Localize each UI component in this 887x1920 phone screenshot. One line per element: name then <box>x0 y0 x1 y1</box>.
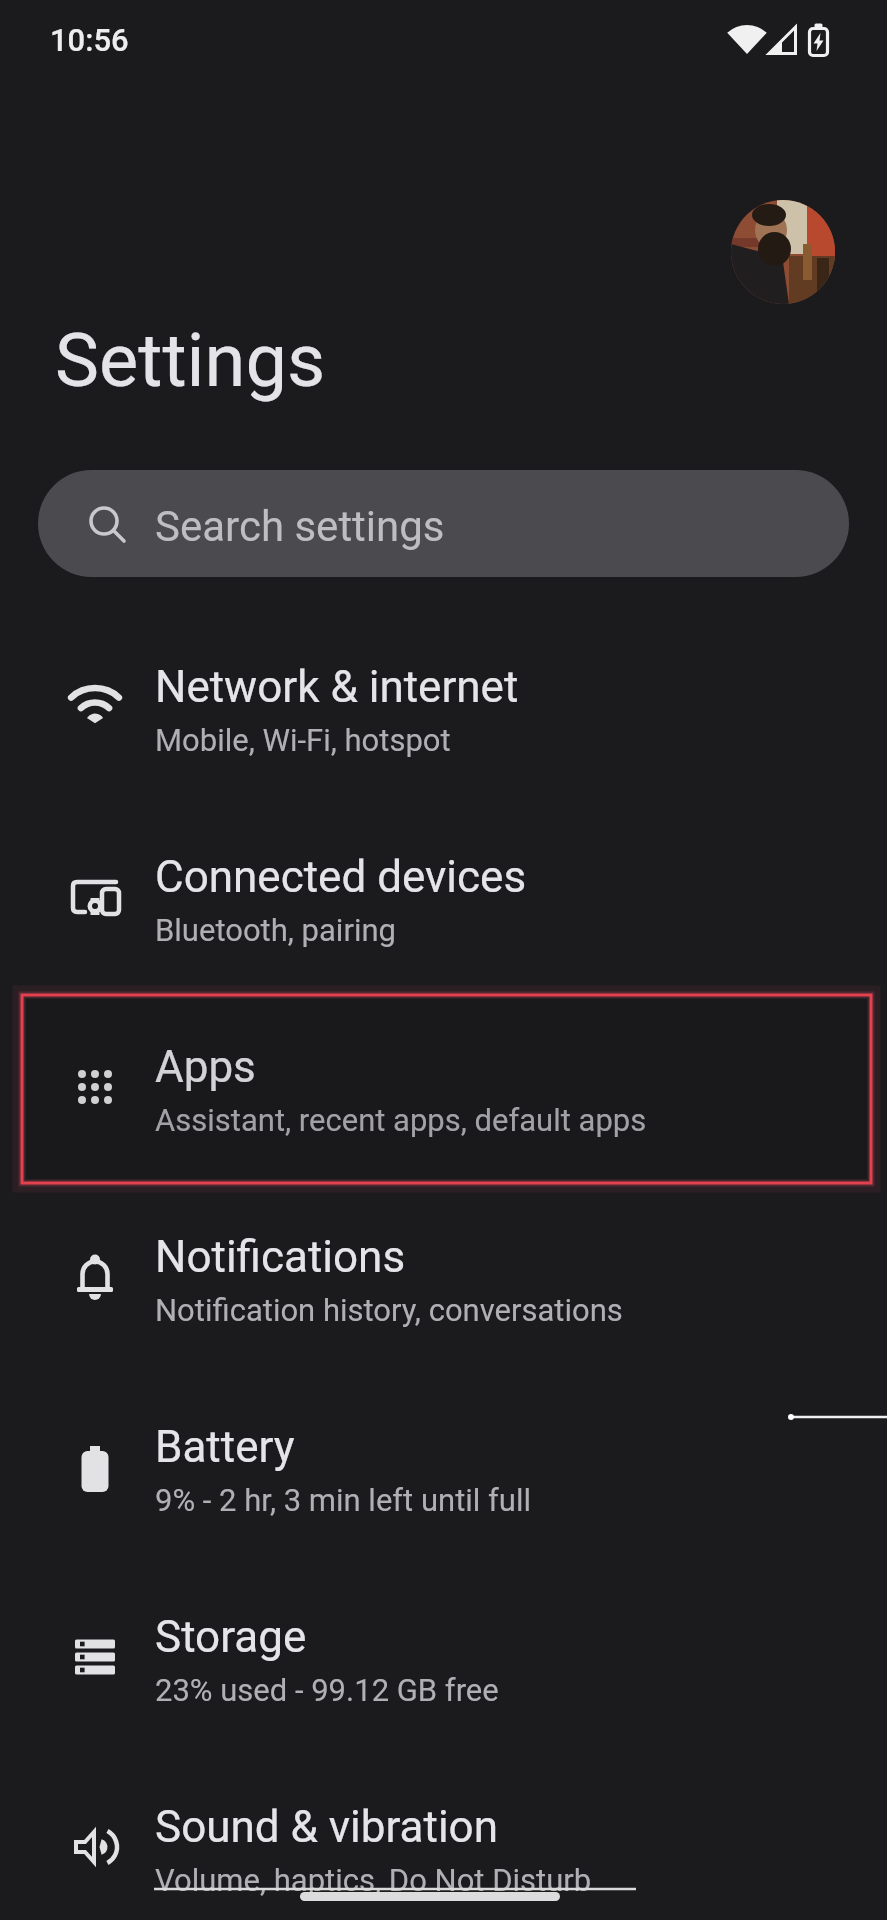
staticText: Storage <box>155 1611 307 1663</box>
staticText: Notification history, conversations <box>155 1292 623 1328</box>
staticText: 23% used - 99.12 GB free <box>155 1672 499 1708</box>
button[interactable]: Search settings <box>38 470 849 577</box>
staticText: 9% - 2 hr, 3 min left until full <box>155 1482 531 1518</box>
staticText: Apps <box>155 1041 256 1093</box>
button[interactable]: Sound & vibration <box>0 1758 887 1920</box>
staticText: Connected devices <box>155 851 527 903</box>
staticText: Search settings <box>155 502 445 551</box>
staticText: Mobile, Wi-Fi, hotspot <box>155 722 451 758</box>
staticText: Sound & vibration <box>155 1801 498 1853</box>
button[interactable]: Network & internet <box>0 618 887 808</box>
staticText: Battery <box>155 1421 295 1473</box>
button[interactable]: Storage <box>0 1568 887 1758</box>
button[interactable]: Notifications <box>0 1188 887 1378</box>
staticText: Notifications <box>155 1231 406 1283</box>
staticText: Network & internet <box>155 661 519 713</box>
button[interactable]: Apps <box>0 998 887 1188</box>
staticText: Volume, haptics, Do Not Disturb <box>155 1862 592 1898</box>
button[interactable]: Connected devices <box>0 808 887 998</box>
staticText: Bluetooth, pairing <box>155 912 396 948</box>
staticText: Settings <box>55 317 326 404</box>
button[interactable]: Battery <box>0 1378 887 1568</box>
button[interactable] <box>731 200 835 304</box>
staticText: Assistant, recent apps, default apps <box>155 1102 647 1138</box>
staticText: 10:56 <box>50 22 129 58</box>
